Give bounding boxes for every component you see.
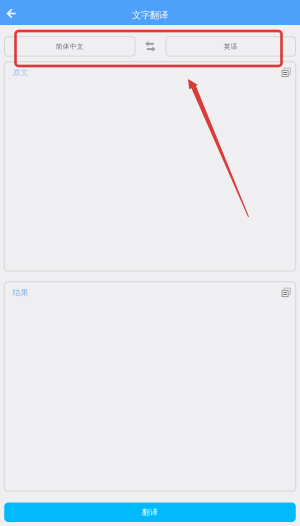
button[interactable]: Back — [0, 2, 23, 25]
button[interactable]: Copy — [280, 66, 293, 79]
staticText: 简体中文 — [56, 42, 84, 51]
button[interactable]: 翻译 — [4, 502, 296, 522]
staticText: 英语 — [224, 42, 238, 51]
staticText: 文字翻译 — [132, 9, 168, 21]
button[interactable]: Copy — [280, 286, 293, 299]
button[interactable]: 英语 — [166, 37, 295, 56]
staticText: 结果 — [13, 288, 29, 297]
button[interactable]: 简体中文 — [4, 37, 135, 56]
staticText: 翻译 — [142, 507, 158, 517]
button[interactable]: Swap languages — [138, 37, 162, 56]
staticText: 原文 — [13, 68, 29, 77]
